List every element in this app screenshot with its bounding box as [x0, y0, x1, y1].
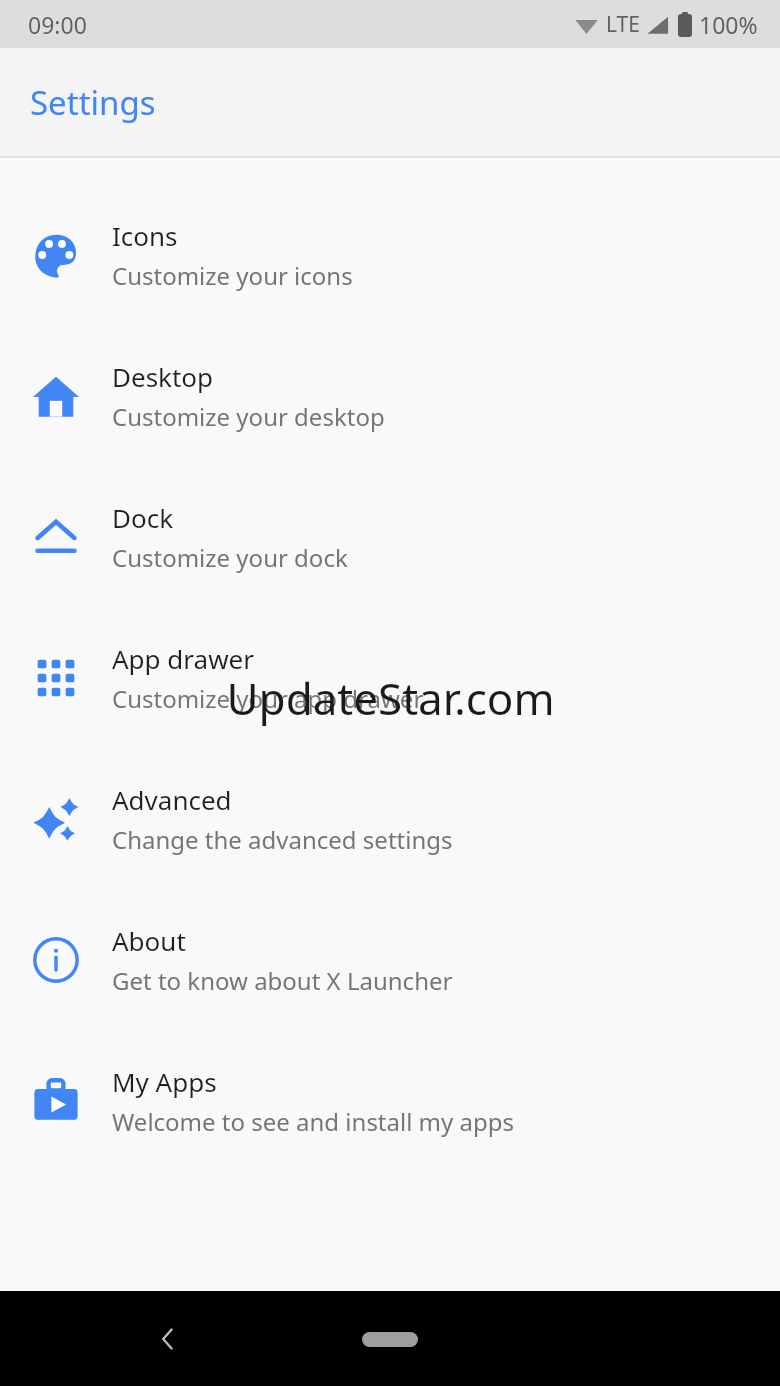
button[interactable]: My Apps: [0, 1030, 780, 1171]
staticText: Settings: [30, 80, 156, 125]
staticText: App drawer: [112, 641, 254, 676]
staticText: Customize your desktop: [112, 400, 385, 433]
button[interactable]: App drawer: [0, 607, 780, 748]
staticText: Customize your dock: [112, 541, 348, 574]
staticText: 09:00: [28, 9, 87, 40]
staticText: Desktop: [112, 359, 214, 394]
button[interactable]: Desktop: [0, 325, 780, 466]
other: App drawer: [35, 657, 77, 699]
button[interactable]: About: [0, 889, 780, 1030]
staticText: 100%: [699, 9, 758, 40]
other: Advanced: [32, 795, 80, 843]
staticText: Welcome to see and install my apps: [112, 1105, 515, 1138]
button[interactable]: Advanced: [0, 748, 780, 889]
other: Dock: [33, 514, 79, 560]
other: My Apps: [33, 1078, 79, 1124]
staticText: Advanced: [112, 782, 232, 817]
staticText: Icons: [112, 218, 178, 253]
staticText: About: [112, 923, 186, 958]
other: Desktop: [32, 372, 80, 420]
staticText: Change the advanced settings: [112, 823, 453, 856]
button[interactable]: Back: [140, 1311, 196, 1367]
staticText: Dock: [112, 500, 174, 535]
staticText: My Apps: [112, 1064, 217, 1099]
staticText: Get to know about X Launcher: [112, 964, 453, 997]
other: Icons: [33, 232, 79, 278]
staticText: LTE: [606, 10, 640, 39]
staticText: Customize your icons: [112, 259, 353, 292]
staticText: UpdateStar.com: [226, 668, 555, 728]
button[interactable]: Icons: [0, 184, 780, 325]
other: About: [33, 937, 79, 983]
button[interactable]: Home: [335, 1316, 445, 1362]
button[interactable]: Dock: [0, 466, 780, 607]
staticText: Customize your app drawer: [112, 682, 424, 715]
